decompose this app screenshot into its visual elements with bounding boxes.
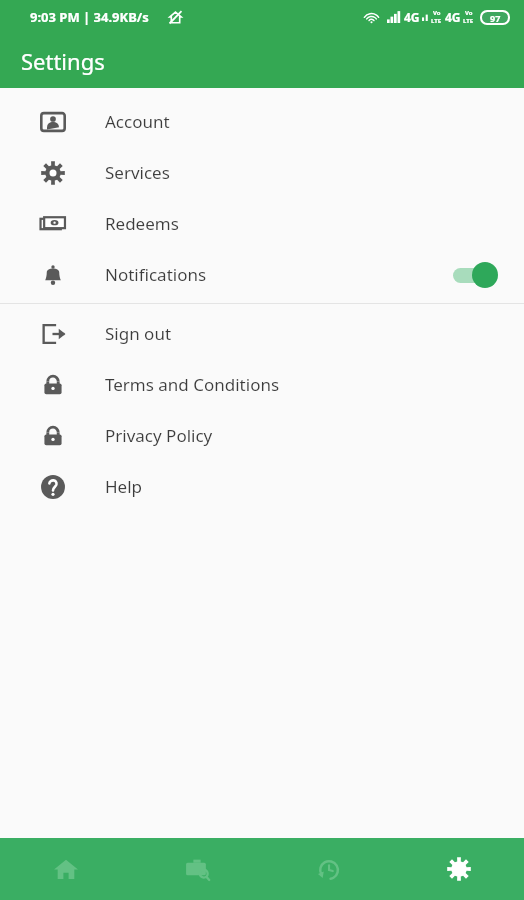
staticText: 4G bbox=[404, 9, 420, 25]
staticText: Privacy Policy bbox=[105, 424, 213, 447]
staticText: Redeems bbox=[105, 212, 179, 235]
button[interactable]: Settings bbox=[393, 838, 524, 900]
staticText: Vo bbox=[465, 9, 473, 17]
button[interactable]: Terms and Conditions bbox=[0, 359, 524, 410]
staticText: Terms and Conditions bbox=[105, 373, 280, 396]
staticText: 9:03 PM | 34.9KB/s bbox=[30, 8, 149, 26]
staticText: Sign out bbox=[105, 322, 172, 345]
staticText: Vo bbox=[433, 9, 441, 17]
button[interactable]: Sign out bbox=[0, 308, 524, 359]
button[interactable]: Account bbox=[0, 96, 524, 147]
button[interactable]: Privacy Policy bbox=[0, 410, 524, 461]
button[interactable]: Home bbox=[0, 838, 131, 900]
button[interactable]: Redeems bbox=[0, 198, 524, 249]
button[interactable]: History bbox=[262, 838, 393, 900]
button[interactable]: Jobs bbox=[131, 838, 262, 900]
staticText: LTE bbox=[431, 17, 442, 25]
staticText: Account bbox=[105, 110, 170, 133]
button[interactable]: Help bbox=[0, 461, 524, 512]
staticText: Services bbox=[105, 161, 170, 184]
button[interactable]: Notifications bbox=[0, 249, 524, 300]
staticText: 4G bbox=[445, 9, 461, 25]
button[interactable]: Services bbox=[0, 147, 524, 198]
staticText: 97 bbox=[490, 12, 501, 23]
button[interactable]: Notifications toggle bbox=[450, 260, 502, 290]
staticText: Settings bbox=[21, 46, 105, 76]
staticText: Notifications bbox=[105, 263, 207, 286]
staticText: LTE bbox=[463, 17, 474, 25]
staticText: Help bbox=[105, 475, 143, 498]
